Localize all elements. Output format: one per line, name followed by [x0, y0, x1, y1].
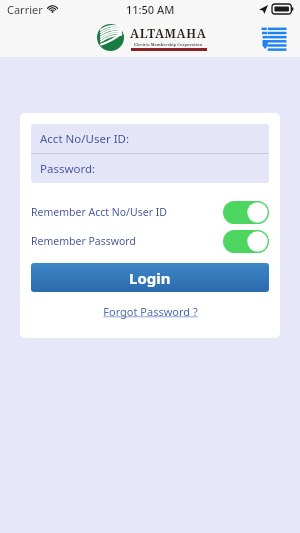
- button[interactable]: Forgot Password ?: [99, 302, 202, 321]
- button[interactable]: Login: [31, 263, 269, 292]
- staticText: ALTAMAHA: [130, 25, 207, 41]
- staticText: Login: [129, 268, 171, 288]
- staticText: Remember Password: [31, 234, 223, 248]
- staticText: Forgot Password ?: [103, 304, 198, 319]
- staticText: Remember Acct No/User ID: [31, 205, 223, 219]
- staticText: Password:: [40, 161, 96, 177]
- staticText: Acct No/User ID:: [40, 131, 130, 147]
- staticText: 11:50 AM: [126, 2, 175, 17]
- button[interactable]: Acct No/User ID:: [31, 124, 269, 153]
- staticText: Carrier: [7, 2, 43, 17]
- button[interactable]: Remember Password: [31, 229, 269, 253]
- button[interactable]: Pay bill: [257, 21, 291, 55]
- button[interactable]: Password:: [31, 154, 269, 183]
- button[interactable]: Remember Acct No/User ID: [31, 200, 269, 224]
- staticText: Electric Membership Corporation: [134, 42, 203, 47]
